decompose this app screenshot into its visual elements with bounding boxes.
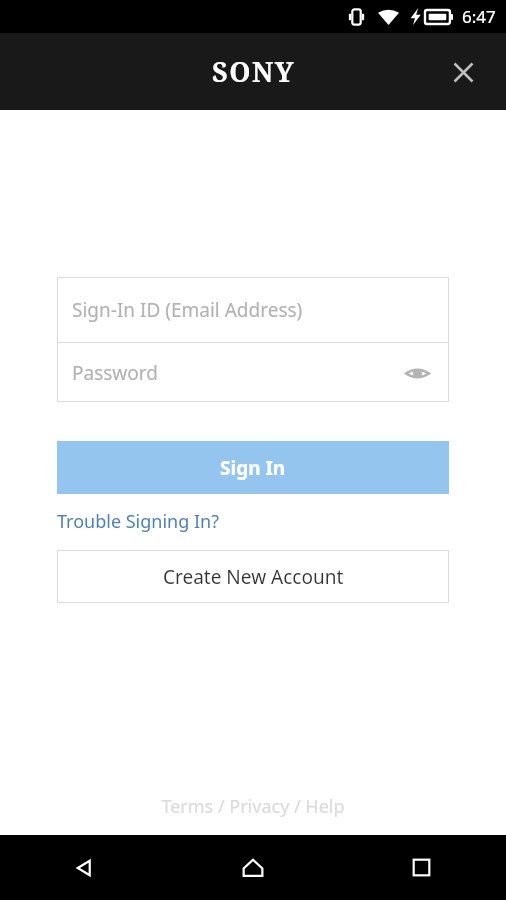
button[interactable]: Back	[0, 835, 168, 900]
button[interactable]: Recent apps	[337, 835, 506, 900]
button[interactable]: Sign In	[57, 441, 449, 494]
button[interactable]: Sign-In ID (Email Address)	[57, 277, 449, 342]
staticText: 6:47	[462, 5, 496, 28]
button[interactable]: Close	[440, 49, 486, 95]
button[interactable]: Trouble Signing In?	[57, 506, 220, 537]
staticText: Create New Account	[163, 564, 344, 590]
staticText: SONY	[212, 53, 295, 90]
staticText: Password	[72, 360, 158, 386]
staticText: Sign-In ID (Email Address)	[72, 297, 303, 323]
button[interactable]: Home	[168, 835, 337, 900]
button[interactable]: Password	[57, 343, 449, 402]
button[interactable]: Show password	[400, 356, 434, 390]
button[interactable]: Terms / Privacy / Help	[161, 794, 345, 819]
button[interactable]: Create New Account	[57, 550, 449, 603]
staticText: Sign In	[220, 455, 286, 481]
staticText: Terms / Privacy / Help	[161, 794, 345, 819]
staticText: Trouble Signing In?	[57, 509, 220, 534]
